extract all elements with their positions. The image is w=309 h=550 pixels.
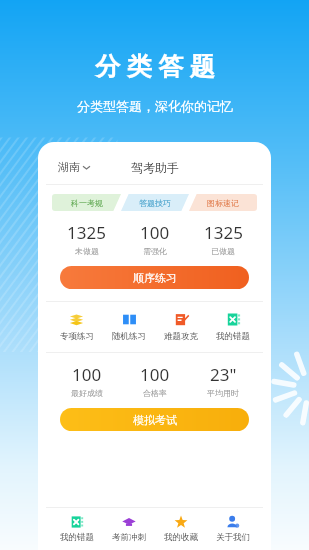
staticText: 我的收藏 — [164, 532, 198, 543]
staticText: 合格率 — [143, 388, 167, 398]
button[interactable]: 模拟考试 — [60, 408, 249, 431]
button[interactable]: 顺序练习 — [60, 266, 249, 289]
staticText: 分类型答题，深化你的记忆 — [77, 98, 233, 114]
staticText: 专项练习 — [60, 331, 94, 342]
button[interactable]: 专项练习 — [50, 310, 103, 344]
staticText: 23" — [210, 363, 237, 386]
button[interactable]: 科一考规 — [52, 194, 121, 211]
staticText: 100 — [140, 363, 170, 386]
staticText: 随机练习 — [112, 331, 146, 342]
button[interactable]: 难题攻克 — [155, 310, 207, 344]
staticText: 100 — [72, 363, 102, 386]
staticText: 图标速记 — [207, 198, 239, 208]
staticText: 未做题 — [75, 246, 99, 256]
staticText: 最好成绩 — [71, 388, 103, 398]
other: 难题攻克 — [174, 312, 189, 327]
staticText: 湖南 — [58, 160, 80, 174]
staticText: 顺序练习 — [133, 271, 177, 285]
other: 关于我们 — [226, 515, 240, 529]
staticText: 考前冲刺 — [112, 532, 146, 543]
button[interactable]: 我的收藏 — [155, 508, 207, 550]
button[interactable]: 23" — [189, 363, 257, 398]
button[interactable]: 随机练习 — [103, 310, 155, 344]
staticText: 100 — [140, 221, 170, 244]
button[interactable]: 答题技巧 — [121, 194, 189, 211]
button[interactable]: 考前冲刺 — [103, 508, 155, 550]
staticText: 1325 — [67, 221, 106, 244]
other: 我的错题 — [70, 515, 84, 529]
button[interactable]: 1325 — [52, 221, 121, 256]
staticText: 分 类 答 题 — [95, 48, 215, 82]
staticText: 1325 — [204, 221, 243, 244]
staticText: 需强化 — [143, 246, 167, 256]
button[interactable]: 湖南 — [56, 158, 92, 176]
staticText: 关于我们 — [216, 532, 250, 543]
button[interactable]: 关于我们 — [207, 508, 259, 550]
staticText: 我的错题 — [216, 331, 250, 342]
button[interactable]: 图标速记 — [189, 194, 257, 211]
button[interactable]: 我的错题 — [50, 508, 103, 550]
button[interactable]: 100 — [52, 363, 121, 398]
staticText: 已做题 — [211, 246, 235, 256]
staticText: 答题技巧 — [139, 198, 171, 208]
other: 随机练习 — [122, 312, 137, 327]
staticText: 模拟考试 — [133, 413, 177, 427]
staticText: 驾考助手 — [131, 160, 179, 175]
other: 考前冲刺 — [122, 515, 136, 529]
staticText: 难题攻克 — [164, 331, 198, 342]
other: 我的错题 — [226, 312, 241, 327]
button[interactable]: 我的错题 — [207, 310, 259, 344]
other: 我的收藏 — [174, 515, 188, 529]
button[interactable]: 100 — [121, 221, 189, 256]
staticText: 我的错题 — [60, 532, 94, 543]
staticText: 科一考规 — [71, 198, 103, 208]
button[interactable]: 100 — [121, 363, 189, 398]
button[interactable]: 1325 — [189, 221, 257, 256]
staticText: 平均用时 — [207, 388, 239, 398]
other: 专项练习 — [69, 312, 84, 327]
